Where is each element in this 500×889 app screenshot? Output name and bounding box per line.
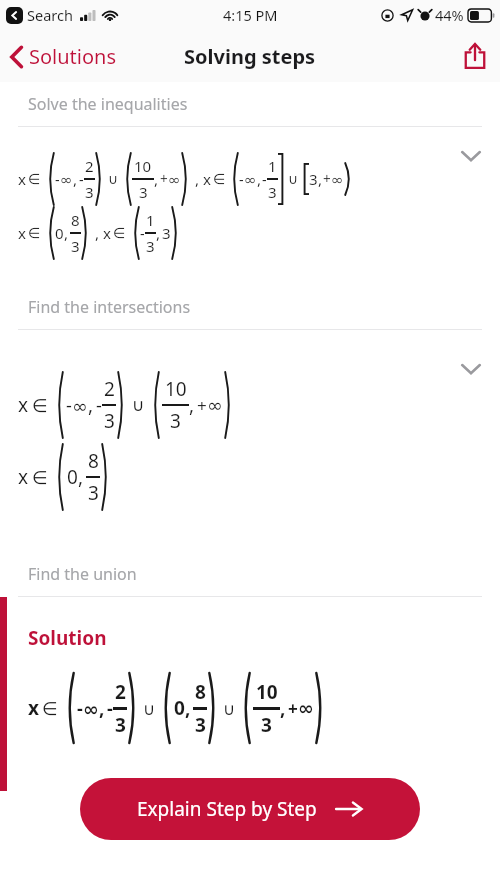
button[interactable]: Solutions (0, 37, 127, 76)
staticText: 3 (170, 408, 181, 434)
staticText: ∞ (83, 698, 99, 720)
staticText: ∪ (108, 171, 119, 187)
staticText: ∈ (113, 225, 126, 242)
staticText: Find the union (28, 563, 137, 585)
staticText: 10 (134, 156, 152, 176)
button[interactable]: Explain Step by Step (80, 778, 420, 840)
staticText: 0 (174, 695, 185, 721)
staticText: 4:15 PM (223, 5, 278, 25)
staticText: x (18, 464, 29, 490)
staticText: 1 (268, 156, 277, 176)
staticText: Explain Step by Step (137, 796, 317, 822)
staticText: 3 (85, 182, 94, 202)
staticText: Solution (28, 625, 107, 651)
staticText: 10 (256, 679, 278, 705)
staticText: - (262, 170, 267, 189)
staticText: , (156, 223, 161, 243)
staticText: ∪ (143, 699, 156, 718)
staticText: 3 (261, 712, 272, 738)
staticText: 0 (55, 223, 64, 243)
staticText: ∞ (168, 171, 181, 188)
staticText: ∈ (32, 467, 48, 488)
staticText: , (73, 169, 78, 189)
staticText: 44% (435, 5, 464, 25)
staticText: 3 (195, 712, 206, 738)
staticText: Solutions (29, 43, 117, 70)
staticText: ∈ (42, 698, 58, 719)
staticText: , (64, 223, 69, 243)
staticText: Solve the inequalities (28, 93, 188, 115)
staticText: ∞ (298, 697, 314, 719)
staticText: ∞ (244, 171, 257, 188)
staticText: 3 (115, 712, 126, 738)
staticText: 3 (162, 223, 171, 243)
staticText: ∪ (132, 395, 145, 415)
staticText: x (18, 169, 26, 189)
staticText: , (88, 392, 94, 418)
staticText: x (18, 223, 26, 243)
staticText: Search (27, 5, 73, 25)
staticText: , (189, 392, 195, 418)
staticText: x (103, 223, 111, 243)
staticText: , (78, 464, 84, 490)
staticText: + (197, 394, 207, 417)
staticText: 3 (88, 480, 99, 506)
staticText: 3 (139, 182, 148, 202)
staticText: Solving steps (184, 43, 316, 70)
staticText: ∞ (207, 394, 223, 416)
staticText: - (55, 170, 60, 189)
staticText: 8 (88, 448, 99, 474)
button[interactable]: Collapse step (460, 362, 482, 376)
staticText: Find the intersections (28, 296, 191, 318)
staticText: 3 (309, 169, 318, 189)
staticText: , (280, 695, 286, 721)
staticText: + (160, 170, 168, 188)
staticText: ∞ (331, 171, 344, 188)
staticText: 2 (85, 156, 94, 176)
staticText: ∪ (223, 699, 236, 718)
staticText: 8 (71, 210, 80, 230)
button[interactable]: Share (450, 35, 500, 77)
staticText: ∈ (213, 171, 226, 188)
staticText: + (288, 697, 298, 720)
staticText: 10 (165, 376, 187, 402)
staticText: + (323, 170, 331, 188)
staticText: x (28, 695, 39, 721)
staticText: ∈ (28, 225, 41, 242)
staticText: ∞ (60, 171, 73, 188)
staticText: 2 (104, 376, 115, 402)
staticText: ∈ (32, 395, 48, 416)
staticText: , (99, 695, 105, 721)
staticText: , (318, 169, 323, 189)
staticText: , (185, 695, 191, 721)
staticText: 2 (115, 679, 126, 705)
staticText: 8 (195, 679, 206, 705)
staticText: 3 (268, 182, 277, 202)
staticText: - (77, 696, 83, 721)
staticText: 3 (146, 236, 155, 256)
staticText: , (95, 223, 100, 243)
staticText: ∞ (72, 395, 88, 417)
staticText: , (195, 169, 200, 189)
staticText: 0 (67, 464, 78, 490)
button[interactable]: Collapse step (460, 149, 482, 163)
staticText: 1 (146, 210, 155, 230)
staticText: , (154, 169, 159, 189)
staticText: - (140, 224, 145, 243)
staticText: , (257, 169, 262, 189)
staticText: ∪ (288, 171, 299, 187)
staticText: x (18, 392, 29, 418)
staticText: ∈ (28, 171, 41, 188)
staticText: - (107, 696, 113, 721)
staticText: 3 (71, 236, 80, 256)
staticText: - (96, 393, 102, 418)
staticText: - (239, 170, 244, 189)
staticText: x (203, 169, 211, 189)
staticText: - (79, 170, 84, 189)
staticText: 3 (104, 408, 115, 434)
staticText: - (66, 393, 72, 418)
